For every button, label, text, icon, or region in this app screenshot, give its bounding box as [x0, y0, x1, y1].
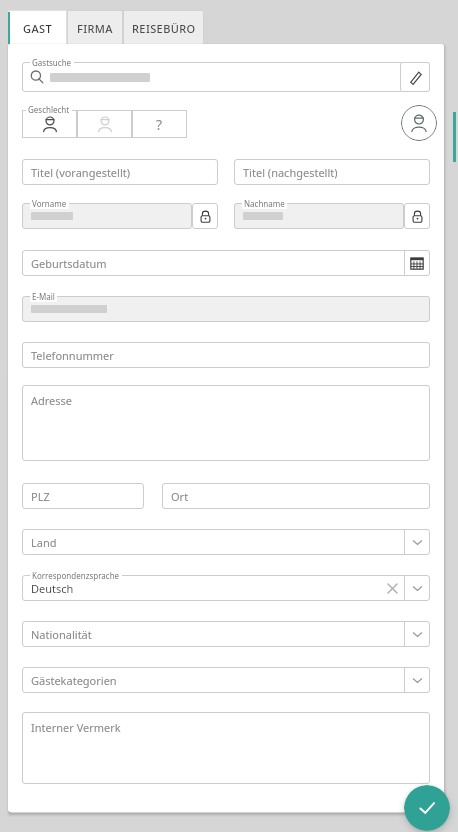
button[interactable]: Auswählen: [404, 667, 430, 693]
button[interactable]: [234, 203, 404, 229]
staticText: Telefonnummer: [31, 348, 114, 363]
button[interactable]: Interner Vermerk: [22, 712, 430, 784]
staticText: Gastsuche: [32, 57, 72, 68]
staticText: Titel (vorangestellt): [31, 165, 131, 180]
staticText: FIRMA: [77, 21, 113, 36]
staticText: Gästekategorien: [31, 673, 117, 688]
button[interactable]: Löschen: [404, 64, 430, 90]
button[interactable]: Sperren: [192, 203, 218, 229]
button[interactable]: Telefonnummer: [22, 342, 430, 368]
button[interactable]: PLZ: [22, 483, 144, 509]
staticText: Adresse: [31, 393, 73, 408]
staticText: GAST: [23, 21, 53, 36]
button[interactable]: Auswählen: [404, 529, 430, 555]
button[interactable]: GAST: [8, 10, 67, 46]
staticText: Ort: [171, 489, 189, 504]
staticText: Deutsch: [31, 581, 74, 596]
staticText: Vorname: [32, 198, 67, 209]
button[interactable]: Land: [22, 529, 430, 555]
button[interactable]: Bearbeiten: [400, 62, 430, 92]
staticText: Interner Vermerk: [31, 720, 121, 735]
button[interactable]: [22, 296, 430, 322]
button[interactable]: Ort: [162, 483, 430, 509]
staticText: REISEBÜRO: [132, 21, 196, 36]
button[interactable]: Auswählen: [404, 575, 430, 601]
button[interactable]: Geburtsdatum: [22, 250, 430, 276]
button[interactable]: Deutsch: [22, 575, 430, 601]
button[interactable]: Nationalität: [22, 621, 430, 647]
button[interactable]: FIRMA: [67, 10, 123, 46]
staticText: E-Mail: [32, 291, 55, 302]
button[interactable]: Profilbild: [401, 105, 437, 141]
button[interactable]: Kalender: [404, 250, 430, 276]
button[interactable]: [22, 203, 192, 229]
staticText: Geschlecht: [28, 104, 70, 115]
staticText: Nationalität: [31, 627, 92, 642]
staticText: Geburtsdatum: [31, 256, 107, 271]
staticText: Land: [31, 535, 57, 550]
staticText: PLZ: [31, 489, 50, 504]
button[interactable]: Löschen: [382, 578, 402, 598]
staticText: Korrespondenzsprache: [32, 570, 120, 581]
button[interactable]: Speichern: [404, 785, 450, 831]
staticText: Nachname: [244, 198, 285, 209]
button[interactable]: Geschlecht: [22, 110, 77, 138]
button[interactable]: Gästekategorien: [22, 667, 430, 693]
staticText: Titel (nachgestellt): [243, 165, 338, 180]
button[interactable]: Löschen: [22, 62, 430, 92]
button[interactable]: Titel (nachgestellt): [234, 159, 430, 185]
button[interactable]: Geschlecht: [132, 110, 187, 138]
button[interactable]: Adresse: [22, 385, 430, 461]
button[interactable]: Geschlecht: [77, 110, 132, 138]
button[interactable]: Auswählen: [404, 621, 430, 647]
button[interactable]: REISEBÜRO: [123, 10, 204, 46]
button[interactable]: Titel (vorangestellt): [22, 159, 218, 185]
button[interactable]: Sperren: [404, 203, 430, 229]
staticText: ?: [156, 115, 163, 134]
